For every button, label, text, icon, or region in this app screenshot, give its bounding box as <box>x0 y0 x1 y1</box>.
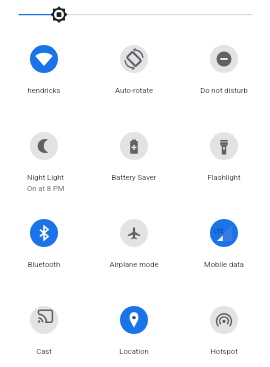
staticText: Cast <box>1 347 87 356</box>
button[interactable]: Battery Saver <box>91 130 177 183</box>
staticText: hendricks <box>1 86 87 95</box>
button[interactable]: Auto-rotate <box>91 43 177 96</box>
staticText: Mobile data <box>181 260 267 269</box>
staticText: Airplane mode <box>91 260 177 269</box>
button[interactable]: Bluetooth <box>1 217 87 270</box>
staticText: Auto-rotate <box>91 86 177 95</box>
button[interactable]: Flashlight <box>181 130 267 183</box>
button[interactable]: Night Light <box>1 130 87 193</box>
staticText: On at 8 PM <box>27 184 65 193</box>
button[interactable]: Cast <box>1 304 87 357</box>
staticText: Location <box>91 347 177 356</box>
button[interactable]: hendricks <box>1 43 87 96</box>
staticText: LTE <box>214 227 224 234</box>
staticText: Bluetooth <box>1 260 87 269</box>
staticText: Night Light <box>27 173 64 182</box>
button[interactable]: LTE <box>181 217 267 270</box>
button[interactable]: Airplane mode <box>91 217 177 270</box>
button[interactable]: Location <box>91 304 177 357</box>
staticText: Flashlight <box>181 173 267 182</box>
staticText: Battery Saver <box>91 173 177 182</box>
staticText: Hotspot <box>181 347 267 356</box>
button[interactable]: Hotspot <box>181 304 267 357</box>
button[interactable]: Brightness <box>0 0 270 29</box>
staticText: Do not disturb <box>181 86 267 95</box>
button[interactable]: Do not disturb <box>181 43 267 96</box>
